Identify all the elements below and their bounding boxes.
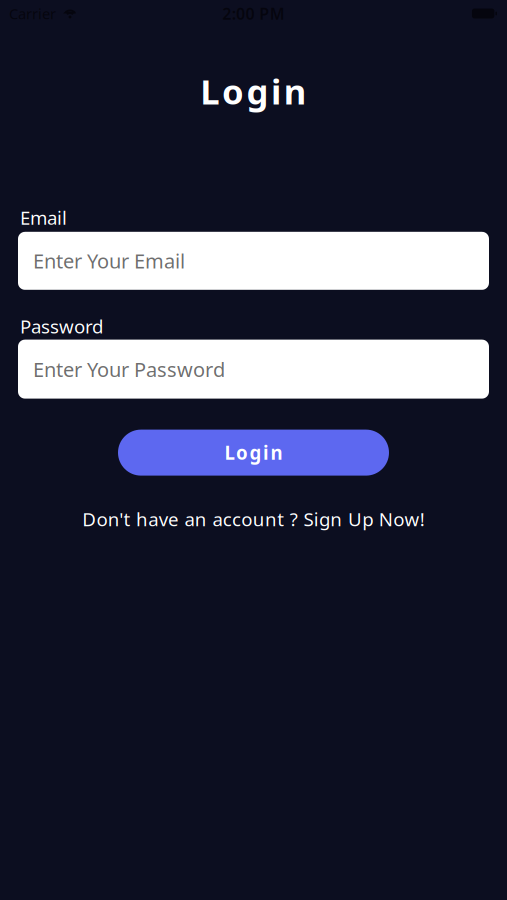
staticText: Password — [20, 314, 103, 339]
staticText: Enter Your Password — [33, 356, 225, 382]
staticText: 2:00 PM — [222, 3, 285, 24]
button[interactable]: Login — [118, 430, 389, 476]
staticText: Login — [200, 68, 307, 114]
staticText: Email — [20, 205, 67, 230]
button[interactable]: Enter Your Password — [18, 340, 489, 399]
staticText: Don't have an account ? Sign Up Now! — [82, 507, 425, 531]
staticText: Login — [224, 440, 282, 465]
staticText: Carrier — [9, 4, 56, 23]
staticText: Enter Your Email — [33, 247, 185, 274]
button[interactable]: Don't have an account ? Sign Up Now! — [82, 507, 425, 531]
button[interactable]: Enter Your Email — [18, 232, 489, 290]
